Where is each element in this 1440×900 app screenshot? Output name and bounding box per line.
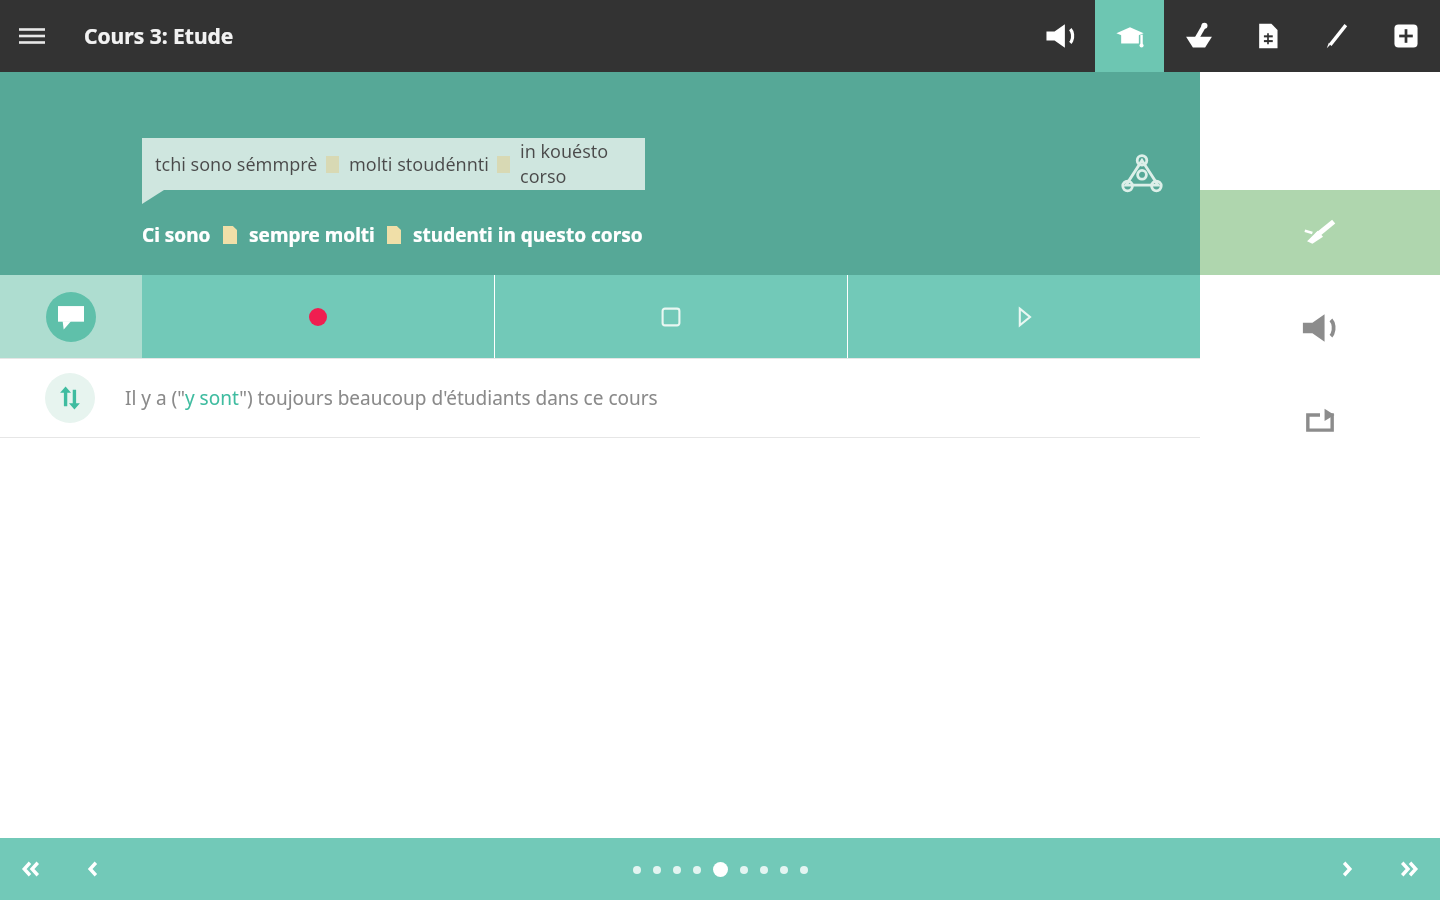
staticText: sempre molti	[249, 222, 375, 248]
staticText: Cours 3: Etude	[84, 22, 234, 51]
button[interactable]: Listen	[1200, 285, 1440, 370]
button[interactable]: Repeat	[1200, 378, 1440, 463]
button[interactable]: Dictation	[1164, 0, 1233, 72]
button[interactable]: Il y a ("y sont") toujours beaucoup d'ét…	[0, 359, 1200, 437]
button[interactable]: Last	[1378, 838, 1440, 900]
button[interactable]: Highlight	[1200, 190, 1440, 275]
button[interactable]: Next	[1316, 838, 1378, 900]
button[interactable]: Add	[1371, 0, 1440, 72]
button[interactable]: Document	[1233, 0, 1302, 72]
button[interactable]: Audio	[1026, 0, 1095, 72]
button[interactable]: Study	[1095, 0, 1164, 72]
staticText: tchi sono sémmprè	[155, 152, 318, 177]
button[interactable]: Stop	[495, 275, 847, 358]
button[interactable]: First	[0, 838, 62, 900]
staticText: Ci sono	[142, 222, 211, 248]
button[interactable]: Record	[142, 275, 494, 358]
button[interactable]: Menu	[10, 14, 54, 58]
button[interactable]: Pronunciation help	[1116, 148, 1168, 200]
staticText: molti stoudénnti	[349, 152, 489, 177]
button[interactable]: Comments	[0, 275, 142, 358]
button[interactable]: Write	[1302, 0, 1371, 72]
staticText: studenti in questo corso	[413, 222, 643, 248]
button[interactable]: Previous	[62, 838, 124, 900]
staticText: in kouésto corso	[520, 139, 645, 189]
button[interactable]: Play	[848, 275, 1200, 358]
staticText: Il y a ("y sont") toujours beaucoup d'ét…	[125, 385, 658, 411]
